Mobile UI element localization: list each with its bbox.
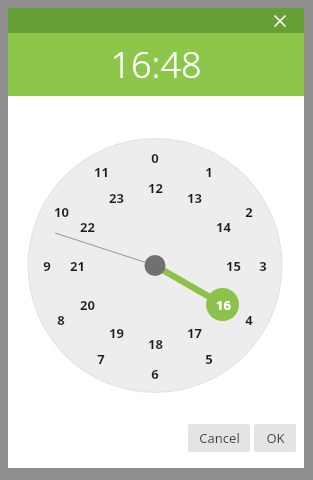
staticText: 13 xyxy=(187,189,202,207)
staticText: 5 xyxy=(205,350,213,368)
staticText: 14 xyxy=(216,218,231,236)
button[interactable]: Hour picker, 16 selected xyxy=(8,96,304,418)
staticText: 15 xyxy=(226,257,241,275)
staticText: 18 xyxy=(148,335,163,353)
button[interactable]: Close xyxy=(269,10,291,32)
staticText: 0 xyxy=(151,149,159,167)
staticText: 3 xyxy=(259,257,267,275)
staticText: 1 xyxy=(205,163,213,181)
staticText: Cancel xyxy=(199,429,240,447)
staticText: 19 xyxy=(109,324,124,342)
button[interactable]: Cancel xyxy=(188,424,250,452)
staticText: 10 xyxy=(54,203,69,221)
staticText: 12 xyxy=(148,179,163,197)
staticText: OK xyxy=(266,429,285,447)
staticText: 7 xyxy=(97,350,105,368)
staticText: 23 xyxy=(109,189,124,207)
button[interactable]: 16:48 xyxy=(8,33,304,96)
staticText: 16:48 xyxy=(110,40,202,89)
staticText: 17 xyxy=(187,324,202,342)
staticText: 6 xyxy=(151,365,159,383)
staticText: 16 xyxy=(216,296,231,314)
staticText: 11 xyxy=(94,163,109,181)
staticText: 2 xyxy=(245,203,253,221)
staticText: 21 xyxy=(70,257,85,275)
button[interactable]: OK xyxy=(254,424,296,452)
staticText: 22 xyxy=(80,218,95,236)
staticText: 4 xyxy=(245,311,253,329)
staticText: 9 xyxy=(43,257,51,275)
staticText: 8 xyxy=(57,311,65,329)
staticText: 20 xyxy=(80,296,95,314)
